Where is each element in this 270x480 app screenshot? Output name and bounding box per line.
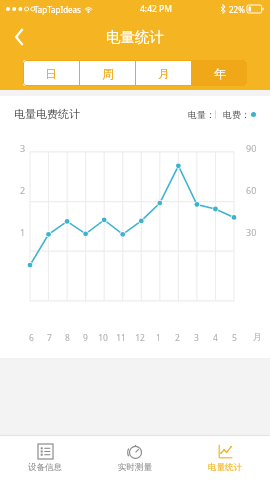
staticText: 1 (156, 332, 161, 344)
staticText: 5 (232, 332, 237, 344)
staticText: 7 (47, 332, 52, 344)
staticText: 电量电费统计 (14, 107, 80, 121)
staticText: 年 (214, 66, 226, 81)
staticText: 电费： (223, 109, 250, 120)
staticText: 30 (246, 226, 257, 238)
button[interactable]: 月 (136, 60, 191, 86)
button[interactable]: 设备信息 (0, 436, 90, 480)
staticText: 3 (194, 332, 199, 344)
staticText: 22% (229, 4, 245, 15)
staticText: 4:42 PM (140, 3, 172, 15)
button[interactable]: 日 (23, 60, 79, 86)
staticText: TapTapIdeas (34, 4, 81, 15)
staticText: 周 (102, 66, 114, 81)
staticText: 9 (83, 332, 88, 344)
button[interactable]: Back (0, 18, 38, 56)
staticText: 月 (158, 66, 170, 81)
staticText: 6 (29, 332, 34, 344)
staticText: 电量统计 (208, 462, 242, 473)
button[interactable]: 实时测量 (90, 436, 180, 480)
staticText: 11 (116, 332, 126, 344)
staticText: 2 (20, 184, 26, 196)
staticText: 12 (135, 332, 145, 344)
staticText: 10 (98, 332, 108, 344)
staticText: 3 (20, 142, 26, 154)
staticText: 2 (175, 332, 180, 344)
staticText: 设备信息 (28, 462, 62, 473)
button[interactable]: 电量统计 (180, 436, 270, 480)
staticText: 1 (20, 226, 26, 238)
staticText: 实时测量 (118, 462, 152, 473)
button[interactable]: 周 (80, 60, 135, 86)
staticText: 60 (246, 184, 257, 196)
staticText: 4 (213, 332, 218, 344)
staticText: 电量： (188, 109, 215, 120)
staticText: 90 (246, 142, 257, 154)
staticText: 8 (65, 332, 70, 344)
staticText: 日 (45, 66, 57, 81)
button[interactable]: 年 (192, 60, 247, 86)
staticText: 月 (253, 332, 262, 343)
staticText: 电量统计 (106, 28, 164, 46)
